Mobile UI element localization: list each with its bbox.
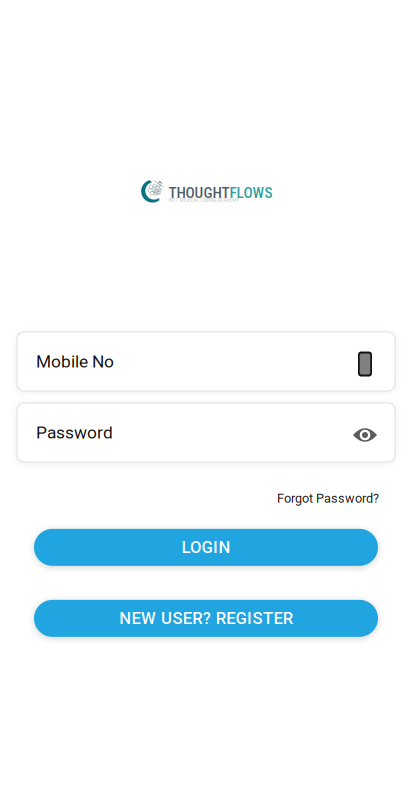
button[interactable]: LOGIN (34, 529, 378, 566)
button[interactable]: Forgot Password? (277, 491, 379, 506)
staticText: THOUGHT (168, 184, 229, 202)
staticText: Password (36, 422, 113, 443)
staticText: Forgot Password? (277, 491, 379, 506)
button[interactable]: Mobile No (17, 332, 395, 391)
staticText: Mobile No (36, 351, 114, 372)
staticText: NO 1 MEDICAL CODING ACADEMY (168, 197, 239, 203)
button[interactable]: NEW USER? REGISTER (34, 600, 378, 637)
staticText: LOGIN (182, 538, 230, 557)
staticText: NEW USER? REGISTER (119, 609, 293, 628)
button[interactable]: Password (17, 403, 395, 462)
staticText: FLOWS (229, 184, 272, 202)
